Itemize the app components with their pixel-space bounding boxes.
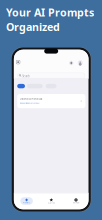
button[interactable]: All [17,84,25,88]
button[interactable]: Prompts [14,195,39,207]
button[interactable]: New prompt [68,60,74,66]
button[interactable]: Settings [64,195,88,207]
staticText: Your AI Prompts [6,5,94,19]
button[interactable]: AI Prompt Vault [15,59,21,65]
staticText: Search [22,74,30,78]
staticText: Onboarding · Starter pack [20,102,40,104]
button[interactable]: Search [17,73,85,78]
button[interactable]: Account [77,59,83,66]
staticText: Organized [6,19,60,34]
staticText: Welcome to AI Prompt Vault [20,97,43,100]
button[interactable]: Welcome to AI Prompt Vault [17,94,85,108]
staticText: Settings [72,202,79,204]
button[interactable]: Starred [39,195,64,207]
staticText: Starred [48,202,55,204]
staticText: Prompts [23,202,30,204]
